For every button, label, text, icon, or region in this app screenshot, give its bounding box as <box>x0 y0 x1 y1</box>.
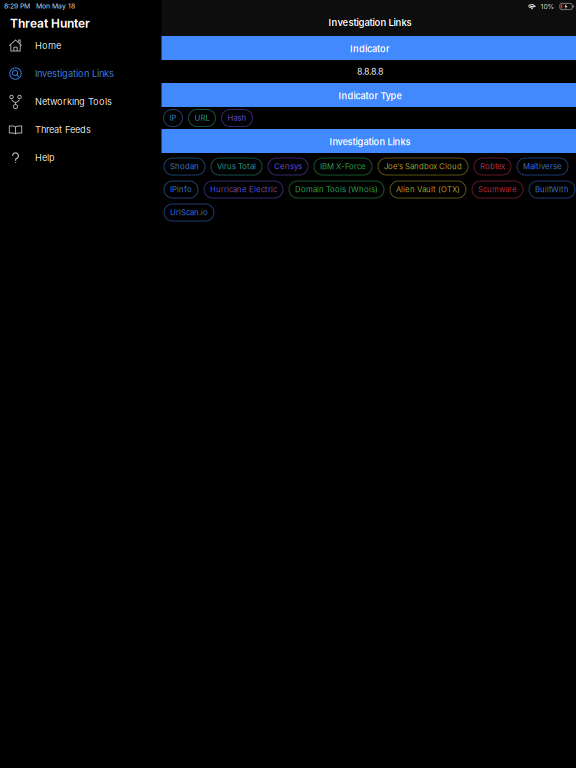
button[interactable]: URL <box>188 109 215 126</box>
staticText: Networking Tools <box>35 96 112 107</box>
staticText: Investigation Links <box>35 68 114 79</box>
staticText: Scumware <box>478 185 517 194</box>
button[interactable]: Threat Feeds <box>0 116 159 144</box>
button[interactable]: IPinfo <box>164 181 198 198</box>
staticText: URL <box>194 113 209 123</box>
staticText: Alien Vault (OTX) <box>396 185 460 194</box>
button[interactable]: IP <box>163 109 182 126</box>
staticText: Domain Tools (Whois) <box>295 185 378 194</box>
staticText: Joe's Sandbox Cloud <box>384 162 462 171</box>
staticText: IP <box>169 113 176 123</box>
staticText: Help <box>35 152 55 163</box>
button[interactable]: Joe's Sandbox Cloud <box>378 158 468 175</box>
button[interactable]: Help <box>0 144 159 172</box>
staticText: 8:29 PM <box>4 2 30 10</box>
button[interactable]: Hurricane Electric <box>204 181 283 198</box>
staticText: Censys <box>274 162 302 171</box>
button[interactable]: Home <box>0 32 159 60</box>
button[interactable]: Networking Tools <box>0 88 159 116</box>
staticText: IBM X-Force <box>320 162 366 171</box>
staticText: Hurricane Electric <box>210 185 277 194</box>
staticText: Indicator Type <box>338 90 401 101</box>
button[interactable]: Censys <box>268 158 308 175</box>
staticText: 10% <box>540 2 554 11</box>
button[interactable]: Hash <box>221 109 252 126</box>
staticText: BuiltWith <box>535 185 569 194</box>
staticText: Mon May 18 <box>36 2 75 10</box>
staticText: 8.8.8.8 <box>357 66 383 77</box>
staticText: Threat Hunter <box>10 16 90 31</box>
button[interactable]: Alien Vault (OTX) <box>390 181 466 198</box>
staticText: Virus Total <box>217 162 256 171</box>
staticText: IPinfo <box>170 185 192 194</box>
button[interactable]: Virus Total <box>211 158 262 175</box>
staticText: UrlScan.io <box>170 208 208 217</box>
button[interactable]: UrlScan.io <box>164 204 214 221</box>
button[interactable]: Investigation Links <box>0 60 159 88</box>
button[interactable]: Scumware <box>472 181 523 198</box>
button[interactable]: Shodan <box>164 158 205 175</box>
button[interactable]: BuiltWith <box>529 181 575 198</box>
staticText: Investigation Links <box>328 17 411 28</box>
staticText: Maltiverse <box>523 162 562 171</box>
staticText: Hash <box>227 113 246 123</box>
button[interactable]: Robtex <box>474 158 511 175</box>
button[interactable]: IBM X-Force <box>314 158 372 175</box>
button[interactable]: Domain Tools (Whois) <box>289 181 384 198</box>
staticText: Indicator <box>350 43 390 54</box>
staticText: Robtex <box>480 162 505 171</box>
staticText: Investigation Links <box>329 136 410 147</box>
staticText: Threat Feeds <box>35 124 91 135</box>
button[interactable]: Maltiverse <box>517 158 568 175</box>
staticText: Home <box>35 40 61 51</box>
staticText: Shodan <box>170 162 199 171</box>
